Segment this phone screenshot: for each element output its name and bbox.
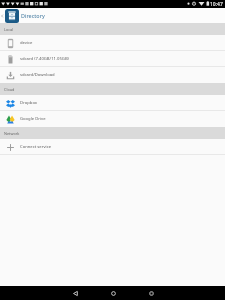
button[interactable]: Connect service	[0, 139, 225, 155]
staticText: Cloud	[4, 87, 15, 92]
staticText: sdcard/Download	[20, 72, 55, 78]
button[interactable]: Back	[56, 286, 94, 300]
staticText: Local	[4, 27, 14, 32]
staticText: 10:47	[210, 1, 223, 8]
staticText: sdcard (7.40GB/11.05GB)	[20, 56, 69, 62]
button[interactable]: Google Drive	[0, 111, 225, 127]
button[interactable]: Home	[94, 286, 132, 300]
staticText: Dropbox	[20, 100, 38, 106]
button[interactable]: device	[0, 35, 225, 51]
staticText: Directory	[21, 12, 45, 19]
staticText: Network	[4, 131, 20, 136]
staticText: device	[20, 40, 33, 46]
staticText: Google Drive	[20, 116, 46, 122]
button[interactable]: Navigate up	[0, 8, 19, 23]
button[interactable]: Recent apps	[132, 286, 170, 300]
button[interactable]: Dropbox	[0, 95, 225, 111]
button[interactable]: sdcard (7.40GB/11.05GB)	[0, 51, 225, 67]
button[interactable]: sdcard/Download	[0, 67, 225, 83]
staticText: Connect service	[20, 144, 52, 150]
